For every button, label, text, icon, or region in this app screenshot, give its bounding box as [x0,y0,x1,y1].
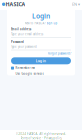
staticText: Remember me [15,66,35,70]
staticText: New to HASICA? [24,21,45,25]
staticText: Email address [11,27,31,31]
staticText: Use Google services [15,72,43,75]
staticText: HASICA [5,1,25,8]
button[interactable]: Use Google services [7,70,75,75]
staticText: Login [32,11,50,20]
staticText: Sign up [46,21,57,25]
button[interactable]: EN ▾ [72,2,80,7]
staticText: Terms of service · Privacy policy [20,136,61,140]
staticText: Type your password [11,45,37,48]
staticText: © 2024 HASICA. All rights reserved. [15,132,66,136]
staticText: Login [35,58,46,63]
button[interactable]: Login [11,57,71,64]
staticText: EN ▾ [72,2,80,7]
staticText: Forgot password? [48,52,71,55]
button[interactable]: Sign up [46,21,57,25]
button[interactable]: Remember me [7,64,75,70]
staticText: Password [11,40,24,44]
staticText: Type your email address [11,32,43,36]
button[interactable]: Forgot password? [48,52,71,55]
